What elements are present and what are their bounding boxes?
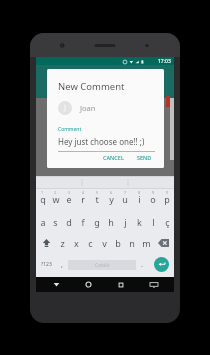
staticText: New Comment [58, 80, 125, 93]
staticText: Joan [80, 103, 96, 113]
button[interactable]: o [146, 189, 160, 209]
staticText: x [74, 237, 79, 249]
staticText: 2 [54, 190, 57, 195]
staticText: i [138, 193, 141, 205]
button[interactable]: b [111, 232, 125, 253]
staticText: l [152, 216, 155, 228]
staticText: . [141, 260, 143, 270]
staticText: z [60, 237, 65, 249]
staticText: 0 [166, 190, 169, 195]
button[interactable]: ?123 [36, 253, 56, 276]
staticText: 17:03 [158, 58, 171, 65]
staticText: r [81, 193, 85, 205]
button[interactable]: e [62, 189, 76, 209]
staticText: 6 [110, 190, 113, 195]
button[interactable]: Back [40, 277, 72, 292]
button[interactable]: z [56, 232, 69, 253]
staticText: y [109, 193, 114, 205]
button[interactable]: v [97, 232, 111, 253]
staticText: p [164, 193, 170, 205]
staticText: f [81, 216, 85, 228]
staticText: 7 [124, 190, 127, 195]
staticText: v [102, 237, 107, 249]
staticText: SEND [137, 154, 152, 160]
staticText: Hey just choose one!! ;) [58, 136, 145, 147]
staticText: h [108, 216, 114, 228]
button[interactable]: r [76, 189, 90, 209]
button[interactable]: k [132, 211, 146, 232]
staticText: u [122, 193, 128, 205]
staticText: 5 [96, 190, 99, 195]
button[interactable]: Space [68, 260, 136, 270]
staticText: , [61, 260, 63, 270]
button[interactable]: CANCEL [100, 152, 127, 162]
staticText: 9 [152, 190, 155, 195]
staticText: ?123 [41, 261, 52, 268]
button[interactable]: c [83, 232, 97, 253]
staticText: CANCEL [103, 154, 124, 160]
button[interactable]: , [56, 253, 68, 276]
button[interactable]: Backspace [153, 232, 174, 253]
staticText: t [95, 193, 99, 205]
staticText: ç [165, 216, 170, 228]
staticText: 8 [138, 190, 141, 195]
button[interactable]: f [76, 211, 90, 232]
button[interactable]: SEND [134, 152, 155, 162]
button[interactable]: Recents [104, 277, 137, 292]
staticText: 3 [68, 190, 71, 195]
staticText: 4 [82, 190, 85, 195]
button[interactable]: Home [72, 277, 104, 292]
button[interactable]: Enter [154, 257, 169, 272]
staticText: q [40, 193, 46, 205]
button[interactable]: i [132, 189, 146, 209]
button[interactable]: a [36, 211, 49, 232]
button[interactable]: . [136, 253, 148, 276]
staticText: w [52, 193, 60, 205]
button[interactable]: d [62, 211, 76, 232]
staticText: b [115, 237, 121, 249]
staticText: a [40, 216, 46, 228]
button[interactable]: n [125, 232, 139, 253]
staticText: 1 [41, 190, 44, 195]
button[interactable]: y [104, 189, 118, 209]
button[interactable]: w [49, 189, 62, 209]
staticText: g [94, 216, 100, 228]
staticText: c [88, 237, 93, 249]
staticText: n [129, 237, 135, 249]
staticText: s [53, 216, 58, 228]
staticText: J [64, 103, 66, 113]
staticText: e [66, 193, 72, 205]
staticText: j [124, 216, 127, 228]
staticText: o [150, 193, 156, 205]
button[interactable]: x [69, 232, 83, 253]
button[interactable]: u [118, 189, 132, 209]
button[interactable]: s [49, 211, 62, 232]
staticText: d [66, 216, 72, 228]
button[interactable]: m [139, 232, 153, 253]
staticText: k [137, 216, 142, 228]
staticText: Català [95, 262, 110, 269]
staticText: m [142, 237, 151, 249]
button[interactable]: ç [160, 211, 174, 232]
button[interactable]: h [104, 211, 118, 232]
button[interactable]: p [160, 189, 174, 209]
button[interactable]: j [118, 211, 132, 232]
button[interactable]: t [90, 189, 104, 209]
button[interactable]: Shift [36, 232, 56, 253]
button[interactable]: l [146, 211, 160, 232]
button[interactable]: q [36, 189, 49, 209]
button[interactable]: g [90, 211, 104, 232]
button[interactable]: Hide keyboard [137, 277, 170, 292]
staticText: Comment [58, 126, 82, 133]
